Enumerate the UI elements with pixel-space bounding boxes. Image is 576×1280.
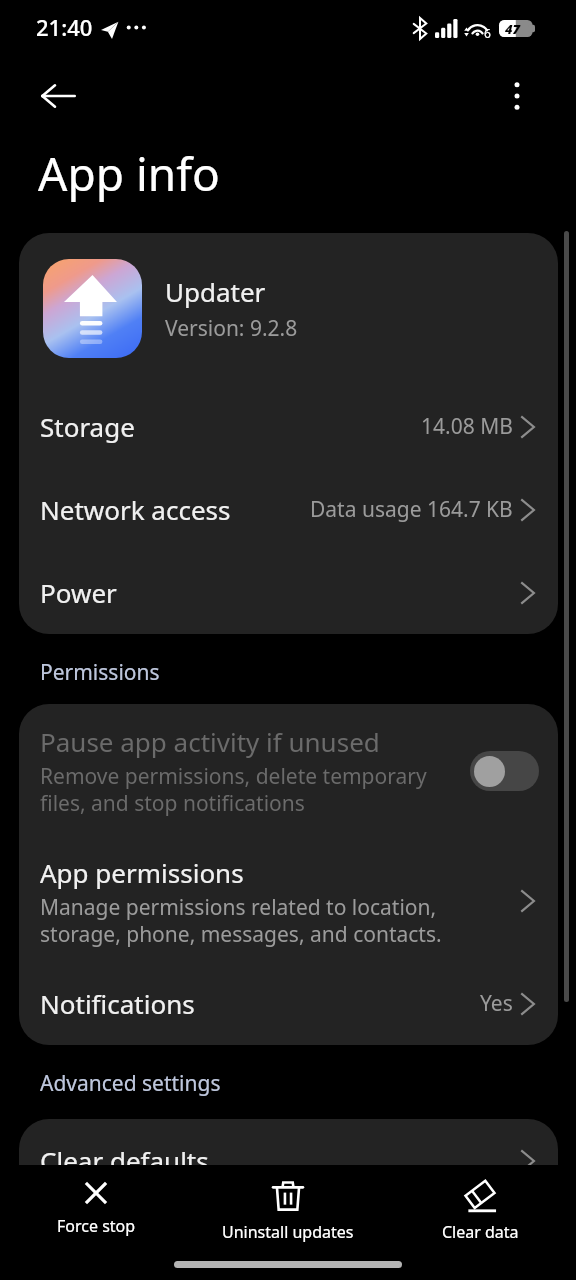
staticText: Clear defaults [40, 1143, 209, 1178]
staticText: Notifications [40, 986, 195, 1021]
staticText: Power [40, 575, 117, 610]
button[interactable]: Back [34, 72, 82, 120]
button[interactable]: Uninstall updates [192, 1165, 384, 1251]
button[interactable]: Clear data [384, 1165, 576, 1251]
button[interactable]: Force stop [0, 1165, 192, 1245]
staticText: Version: 9.2.8 [165, 314, 298, 343]
button[interactable]: App permissions [19, 840, 558, 962]
staticText: 21:40 [36, 12, 93, 42]
staticText: 14.08 MB [421, 412, 513, 441]
other: Pause app activity toggle [470, 751, 539, 791]
button[interactable]: Clear defaults [19, 1119, 558, 1202]
staticText: Remove permissions, delete temporary fil… [40, 762, 430, 817]
staticText: Clear data [442, 1221, 519, 1243]
staticText: Yes [480, 989, 513, 1018]
button[interactable]: Network access [19, 468, 558, 551]
button[interactable]: Storage [19, 385, 558, 468]
staticText: Manage permissions related to location, … [40, 893, 460, 948]
staticText: Force stop [57, 1215, 136, 1237]
button[interactable]: Pause app activity if unused [19, 704, 558, 840]
button[interactable]: Power [19, 551, 558, 634]
button[interactable]: Notifications [19, 962, 558, 1045]
staticText: Data usage 164.7 KB [310, 495, 513, 524]
staticText: Updater [165, 274, 266, 309]
staticText: App permissions [40, 855, 244, 890]
staticText: Advanced settings [40, 1069, 221, 1098]
staticText: Storage [40, 409, 135, 444]
button[interactable]: Open by default [19, 1202, 558, 1280]
staticText: Open by default [40, 1224, 236, 1259]
staticText: 47 [505, 20, 521, 37]
staticText: Uninstall updates [222, 1221, 354, 1243]
button[interactable]: More options [493, 72, 541, 120]
staticText: Pause app activity if unused [40, 724, 380, 759]
staticText: 6 [484, 25, 491, 41]
button[interactable]: Updater [19, 233, 558, 385]
staticText: Network access [40, 492, 231, 527]
staticText: App info [38, 142, 220, 205]
staticText: Permissions [40, 658, 160, 687]
